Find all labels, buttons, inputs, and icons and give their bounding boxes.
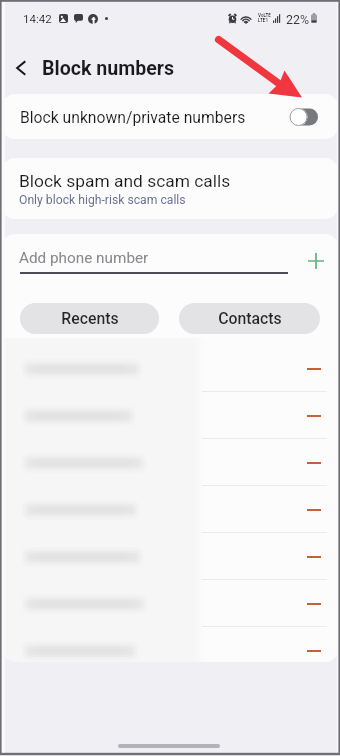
button[interactable]	[2, 439, 338, 486]
button[interactable]: Navigate up	[0, 46, 42, 90]
button[interactable]: Block unknown and private numbers	[290, 108, 318, 126]
staticText: Add phone number	[19, 249, 149, 267]
staticText: 22%	[286, 12, 310, 27]
button[interactable]	[2, 345, 338, 392]
button[interactable]	[2, 580, 338, 627]
button[interactable]	[2, 392, 338, 439]
staticText: VoLTE	[258, 13, 271, 18]
button[interactable]	[2, 533, 338, 580]
button[interactable]	[2, 627, 338, 662]
staticText: Recents	[61, 309, 119, 328]
button[interactable]: Block unknown/private numbers	[2, 94, 338, 139]
staticText: LTE1	[258, 18, 269, 23]
staticText: 14:42	[23, 12, 52, 25]
button[interactable]: Recents	[20, 303, 159, 334]
staticText: Contacts	[218, 309, 282, 328]
staticText: Block numbers	[42, 57, 175, 80]
staticText: Only block high-risk scam calls	[19, 193, 186, 207]
button[interactable]: Add number	[300, 245, 331, 276]
button[interactable]: Contacts	[179, 303, 320, 334]
staticText: Block unknown/private numbers	[20, 108, 246, 126]
button[interactable]: Block spam and scam calls	[2, 158, 338, 219]
staticText: Block spam and scam calls	[19, 171, 231, 191]
button[interactable]	[2, 486, 338, 533]
